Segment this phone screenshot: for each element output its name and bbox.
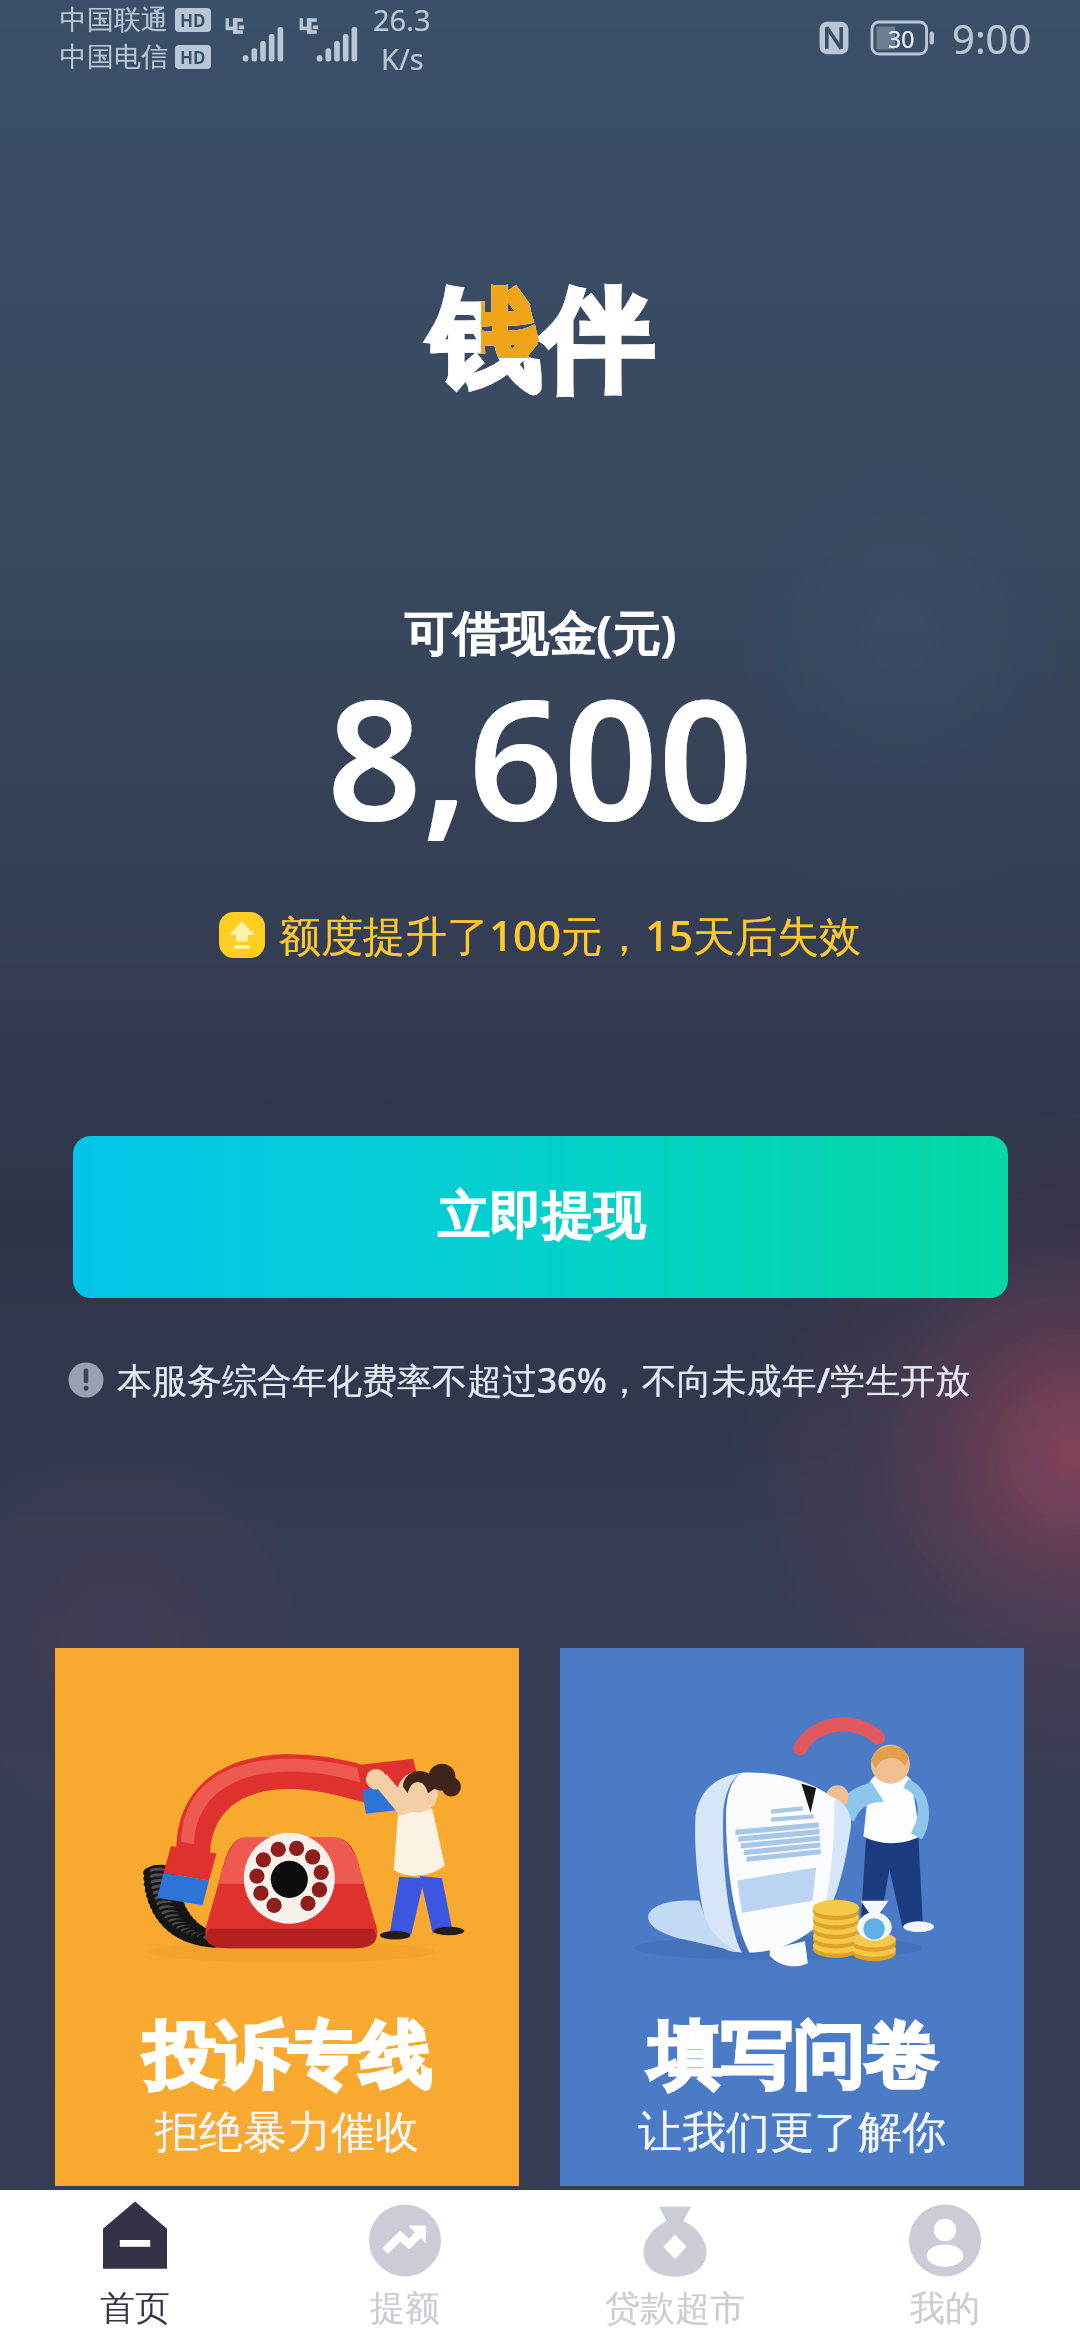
staticText: 立即提现	[437, 1184, 645, 1250]
staticText: 额度提升了100元，15天后失效	[279, 906, 862, 963]
staticText: 26.3	[373, 0, 431, 39]
button[interactable]: 首页	[0, 2190, 270, 2340]
staticText: 钱	[481, 272, 540, 358]
staticText: 提额	[370, 2286, 440, 2330]
button[interactable]: 填写问卷	[560, 1648, 1024, 2186]
button[interactable]: 提额	[270, 2190, 540, 2340]
staticText: 填写问卷	[648, 2012, 936, 2103]
staticText: HD	[180, 46, 206, 69]
staticText: 首页	[100, 2286, 170, 2330]
staticText: 中国联通	[60, 3, 168, 37]
staticText: 让我们更了解你	[638, 2105, 946, 2160]
staticText: 拒绝暴力催收	[155, 2105, 419, 2160]
button[interactable]: 立即提现	[73, 1136, 1008, 1298]
staticText: 钱伴	[428, 272, 652, 413]
button[interactable]: 投诉专线	[55, 1648, 519, 2186]
staticText: K/s	[381, 39, 424, 76]
staticText: 9:00	[952, 11, 1032, 65]
staticText: 30	[888, 23, 915, 54]
staticText: 8,600	[327, 643, 754, 869]
staticText: 贷款超市	[605, 2286, 745, 2330]
staticText: 投诉专线	[143, 2012, 431, 2103]
staticText: 中国电信	[60, 40, 168, 74]
staticText: 我的	[910, 2286, 980, 2330]
staticText: 本服务综合年化费率不超过36%，不向未成年/学生开放	[117, 1356, 971, 1404]
button[interactable]: 贷款超市	[540, 2190, 810, 2340]
button[interactable]: 我的	[810, 2190, 1080, 2340]
staticText: HD	[180, 9, 206, 32]
staticText: 可借现金(元)	[404, 600, 677, 666]
